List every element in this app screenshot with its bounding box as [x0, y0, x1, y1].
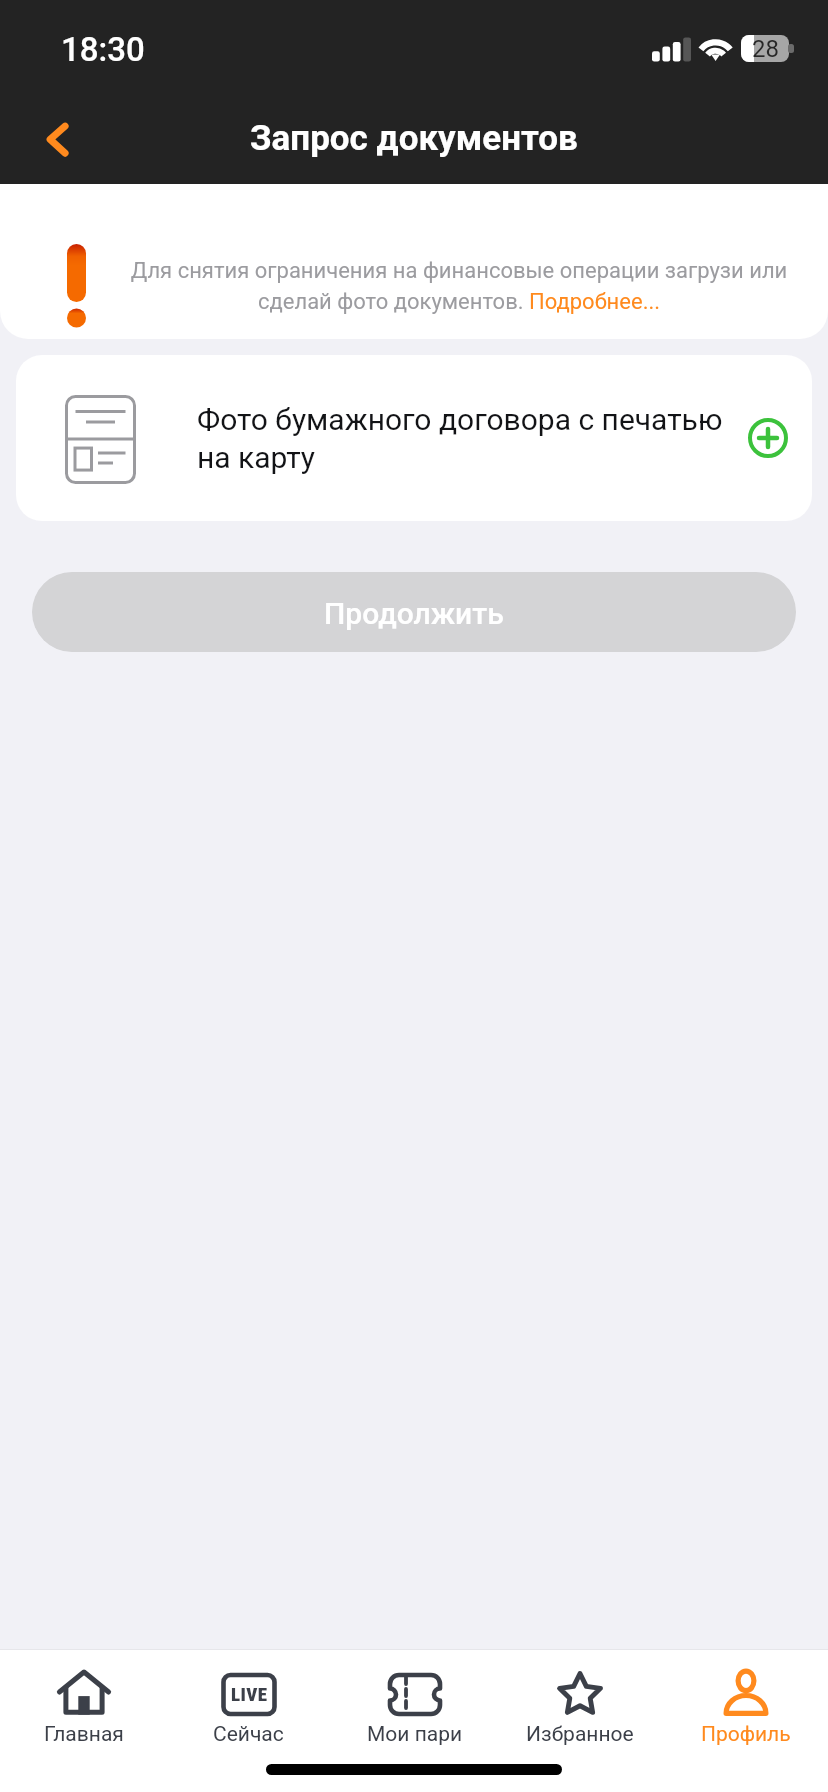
staticText: Запрос документов — [250, 118, 578, 159]
staticText: Сейчас — [213, 1722, 284, 1746]
staticText: LIVE — [231, 1683, 268, 1705]
button[interactable]: LIVE — [166, 1650, 331, 1746]
staticText: Мои пари — [367, 1722, 463, 1746]
button[interactable]: Фото бумажного договора с печатью на кар… — [16, 355, 812, 521]
button[interactable]: Главная — [1, 1650, 166, 1746]
button[interactable]: Для снятия ограничения на финансовые опе… — [127, 258, 791, 314]
button[interactable]: Профиль — [663, 1650, 828, 1746]
staticText: Фото бумажного договора с печатью на кар… — [197, 402, 732, 475]
staticText: 28 — [752, 35, 779, 62]
staticText: Главная — [44, 1722, 124, 1746]
button[interactable]: Назад — [20, 98, 96, 174]
button[interactable]: Мои пари — [332, 1650, 497, 1746]
button[interactable]: Добавить документ — [740, 410, 796, 466]
button[interactable]: Продолжить — [32, 572, 796, 652]
button[interactable]: Избранное — [497, 1650, 662, 1746]
staticText: Профиль — [701, 1722, 791, 1746]
staticText: Избранное — [526, 1722, 634, 1746]
staticText: Продолжить — [324, 596, 504, 631]
staticText: 18:30 — [61, 30, 145, 69]
